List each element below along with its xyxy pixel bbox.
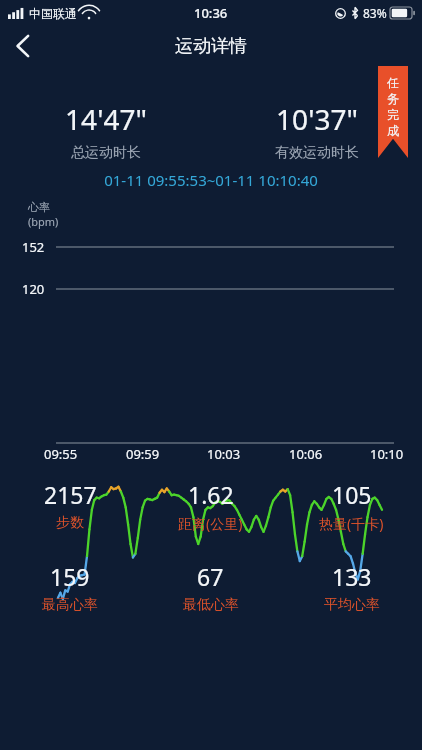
staticText: 最高心率	[42, 596, 98, 614]
staticText: 步数	[56, 514, 84, 532]
staticText: 10:36	[194, 4, 228, 22]
button[interactable]: 2157	[0, 479, 140, 532]
staticText: 83%	[363, 5, 387, 21]
staticText: 09:59	[126, 445, 160, 463]
staticText: 10:03	[207, 445, 241, 463]
button[interactable]: 1.62	[140, 479, 281, 533]
staticText: 105	[332, 479, 372, 510]
staticText: 热量(千卡)	[319, 514, 384, 533]
staticText: 中国联通	[29, 6, 77, 21]
staticText: 2157	[44, 479, 97, 510]
staticText: 最低心率	[183, 596, 239, 614]
staticText: 159	[50, 561, 90, 592]
staticText: 运动详情	[175, 35, 247, 58]
button[interactable]: Back	[0, 26, 46, 66]
button[interactable]: 105	[281, 479, 422, 533]
staticText: 10:10	[370, 445, 404, 463]
staticText: 14'47"	[65, 100, 147, 138]
staticText: 152	[22, 238, 45, 256]
staticText: 有效运动时长	[275, 144, 359, 162]
button[interactable]: 159	[0, 561, 140, 614]
staticText: 01-11 09:55:53~01-11 10:10:40	[0, 170, 422, 190]
button[interactable]: 67	[140, 561, 281, 614]
staticText: 09:55	[44, 445, 78, 463]
staticText: 距离(公里)	[178, 514, 243, 533]
staticText: 心率	[28, 200, 50, 214]
staticText: 133	[332, 561, 372, 592]
staticText: 成	[387, 123, 399, 138]
staticText: 平均心率	[324, 596, 380, 614]
staticText: 任	[387, 75, 399, 90]
staticText: 10:06	[289, 445, 323, 463]
staticText: 10'37"	[276, 100, 358, 138]
staticText: 67	[197, 561, 224, 592]
staticText: 总运动时长	[71, 144, 141, 162]
staticText: 120	[22, 280, 45, 298]
button[interactable]: 133	[281, 561, 422, 614]
staticText: 1.62	[188, 479, 234, 510]
staticText: 务	[387, 91, 399, 106]
staticText: 完	[387, 107, 399, 122]
staticText: (bpm)	[28, 214, 59, 229]
